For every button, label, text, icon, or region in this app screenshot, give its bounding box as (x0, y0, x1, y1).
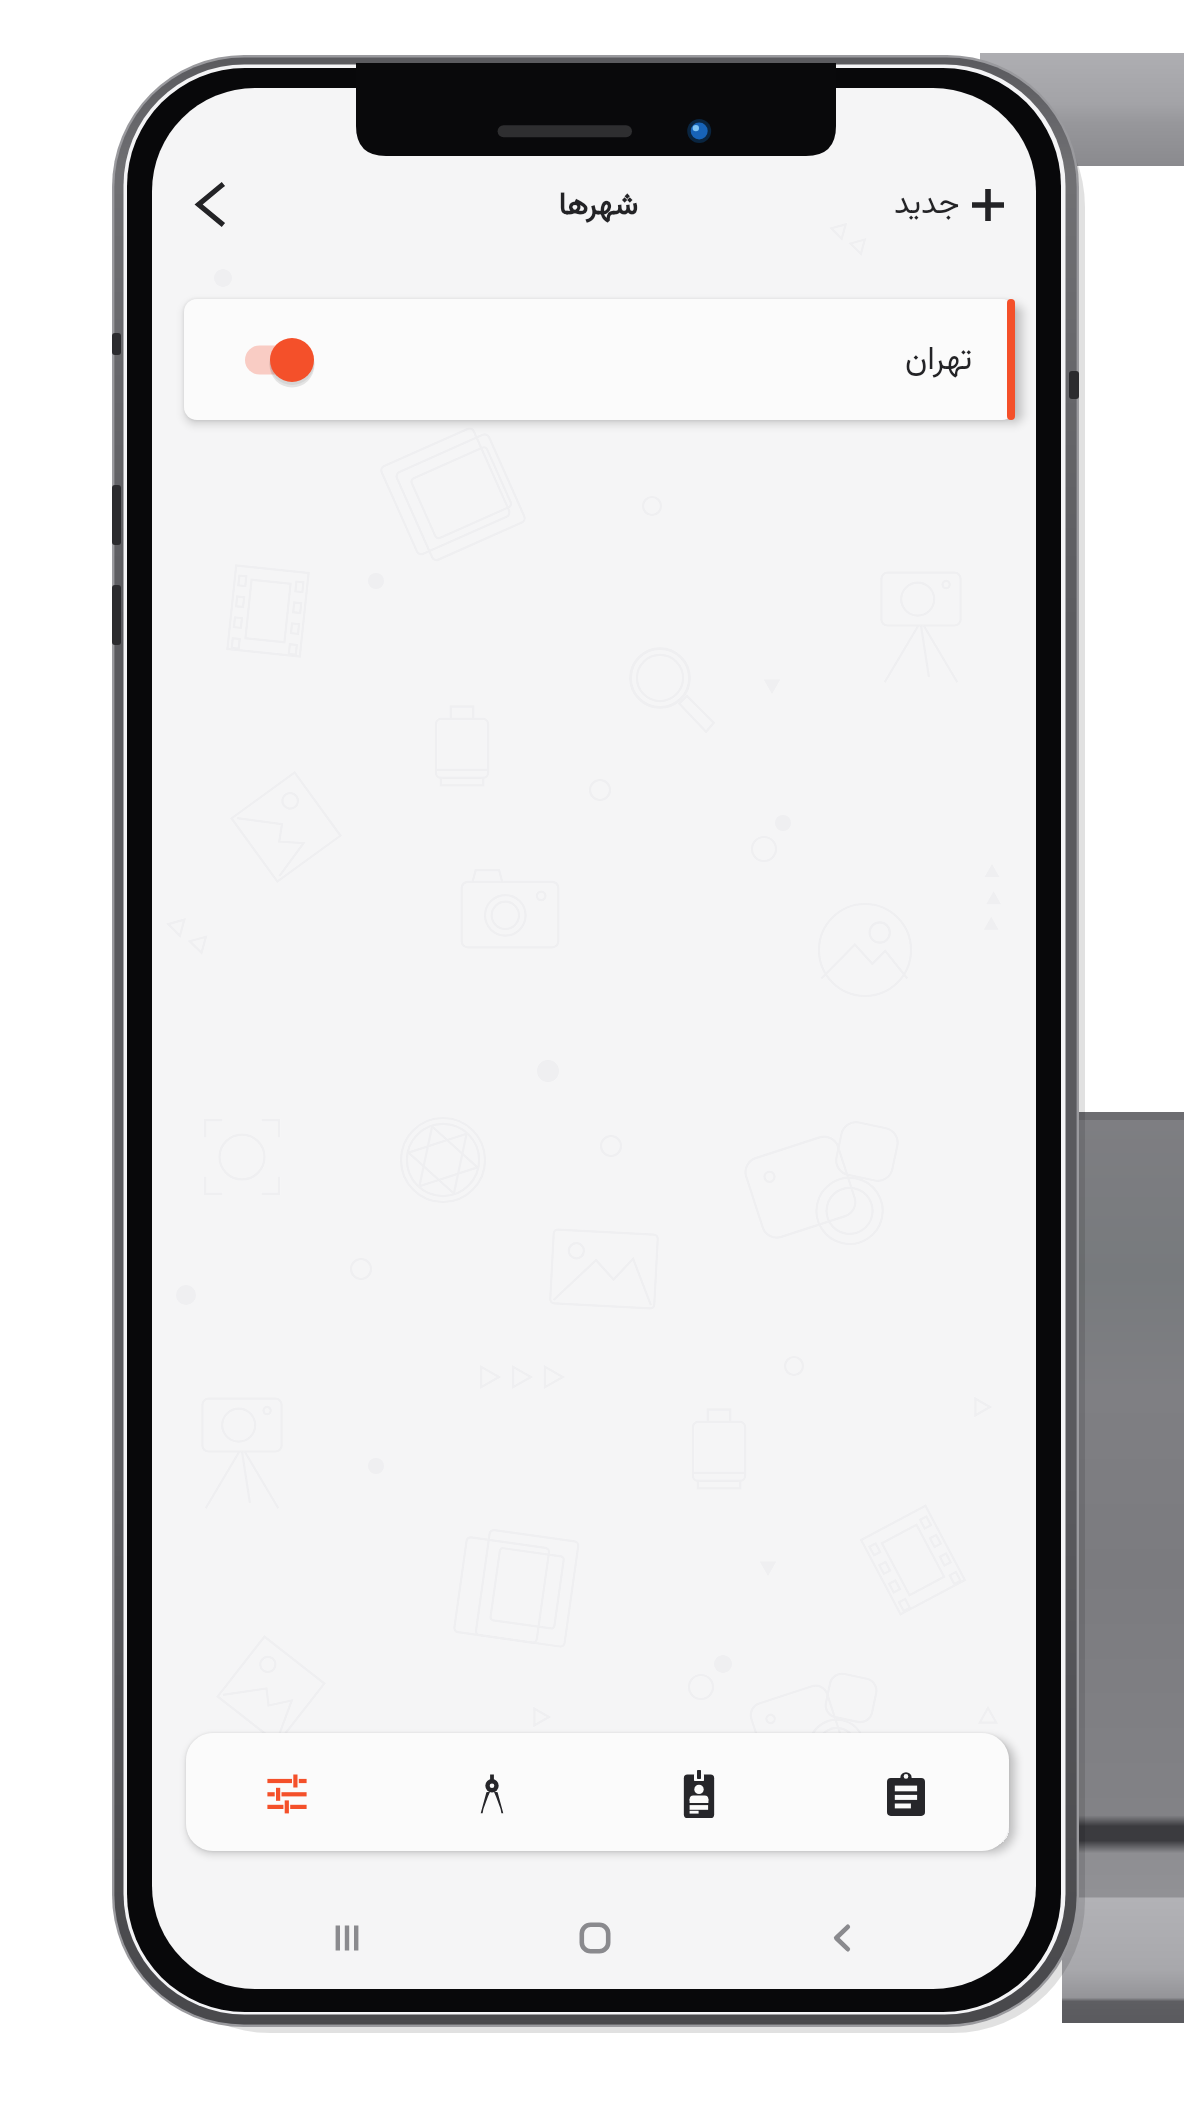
button[interactable]: Tasks (856, 1733, 956, 1851)
button[interactable]: Back (172, 166, 248, 242)
staticText: شهرها (559, 182, 639, 230)
button[interactable]: Back (803, 1903, 883, 1973)
button[interactable]: Home (555, 1903, 635, 1973)
button[interactable]: Design (442, 1733, 542, 1851)
button[interactable]: Contacts (649, 1733, 749, 1851)
button[interactable] (184, 299, 1015, 420)
button[interactable]: جدید (886, 172, 1012, 238)
staticText: جدید (894, 180, 960, 230)
button[interactable]: Recents (307, 1903, 387, 1973)
staticText: تهران (905, 335, 973, 387)
button[interactable]: Filters (237, 1733, 337, 1851)
